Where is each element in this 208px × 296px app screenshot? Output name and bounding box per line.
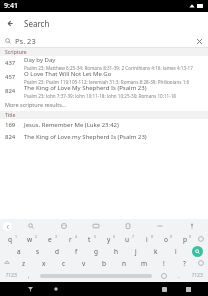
staticText: 457 (5, 73, 16, 81)
staticText: Day by Day (24, 56, 56, 64)
button[interactable]: Search (186, 245, 208, 257)
staticText: o (164, 235, 168, 244)
button[interactable]: q (0, 233, 20, 245)
staticText: s (36, 247, 40, 256)
button[interactable]: y (99, 233, 118, 245)
button[interactable]: 824 (0, 131, 208, 143)
staticText: Jesus, Remember Me (Luke 23:42) (24, 121, 119, 129)
staticText: 3 (55, 234, 58, 239)
button[interactable]: Voice input (176, 219, 208, 233)
button[interactable]: g (86, 245, 106, 257)
button[interactable]: d (47, 245, 66, 257)
button[interactable]: 169 (0, 119, 208, 131)
button[interactable]: z (14, 257, 34, 269)
staticText: The King of Love my Shepherd Is (Psalm 2… (24, 133, 147, 141)
button[interactable]: v (74, 257, 94, 269)
button[interactable]: , (22, 269, 36, 282)
button[interactable]: ?123 (0, 269, 22, 282)
staticText: . (178, 272, 180, 280)
button[interactable]: Clipboard (112, 219, 144, 233)
staticText: m (141, 259, 148, 268)
button[interactable]: 824 (0, 84, 208, 98)
staticText: t (88, 235, 91, 244)
button[interactable]: x (34, 257, 54, 269)
button[interactable]: ? (174, 257, 194, 269)
button[interactable]: . (172, 269, 186, 282)
button[interactable]: 437 (0, 56, 208, 70)
button[interactable]: e (40, 233, 60, 245)
staticText: 7 (132, 234, 135, 239)
staticText: Psalm 23; Psalm 119:105-112; Jeremiah 31… (24, 79, 190, 84)
button[interactable]: s (28, 245, 47, 257)
button[interactable]: 457 (0, 70, 208, 84)
staticText: More scripture results... (5, 101, 67, 108)
button[interactable]: Expand toolbar (0, 219, 14, 233)
button[interactable]: a (9, 245, 28, 257)
button[interactable]: Emoji (47, 219, 80, 233)
button[interactable]: ! (154, 257, 174, 269)
staticText: 4 (75, 234, 78, 239)
staticText: r (69, 235, 72, 244)
staticText: ! (163, 259, 165, 268)
button[interactable]: u (118, 233, 137, 245)
button[interactable]: m (134, 257, 154, 269)
button[interactable]: Backspace (194, 257, 208, 269)
button[interactable]: w (20, 233, 40, 245)
staticText: Search (24, 18, 50, 29)
button[interactable]: Backspace (194, 233, 208, 245)
staticText: f (75, 247, 78, 256)
staticText: g (94, 247, 98, 256)
staticText: v (82, 259, 86, 268)
button[interactable]: j (126, 245, 146, 257)
staticText: The King of Love My Shepherd Is (Psalm 2… (24, 84, 147, 92)
button[interactable]: c (54, 257, 74, 269)
button[interactable]: r (60, 233, 80, 245)
staticText: O Love That Will Not Let Me Go (24, 70, 112, 78)
staticText: e (48, 235, 52, 244)
staticText: 9:41 (4, 1, 18, 11)
button[interactable]: o (156, 233, 175, 245)
button[interactable]: Clear search (193, 35, 205, 47)
staticText: w (27, 235, 33, 244)
staticText: l (175, 247, 177, 256)
staticText: 9 (170, 234, 173, 239)
button[interactable]: Emoji (156, 269, 172, 282)
staticText: Scripture (5, 49, 27, 56)
staticText: x (42, 259, 46, 268)
button[interactable]: p (175, 233, 194, 245)
button[interactable]: Back (182, 283, 194, 295)
button[interactable]: b (94, 257, 114, 269)
button[interactable]: h (106, 245, 126, 257)
button[interactable]: f (66, 245, 86, 257)
staticText: y (107, 235, 111, 244)
button[interactable]: Home (50, 283, 62, 295)
staticText: n (122, 259, 127, 268)
button[interactable]: Search (14, 219, 47, 233)
staticText: u (125, 235, 130, 244)
staticText: p (183, 235, 187, 244)
button[interactable]: n (114, 257, 134, 269)
button[interactable]: Shift (0, 257, 14, 269)
staticText: i (146, 235, 148, 244)
staticText: 437 (5, 59, 16, 67)
button[interactable]: Keyboard layout (24, 283, 36, 295)
staticText: 0 (189, 234, 192, 239)
button[interactable]: GIF (80, 219, 112, 233)
button[interactable]: l (166, 245, 186, 257)
button[interactable]: i (137, 233, 156, 245)
staticText: 824 (5, 133, 16, 141)
button[interactable]: k (146, 245, 166, 257)
staticText: Psalm 23; Matthew 6:25-34; Romans 8:31-3… (24, 65, 193, 70)
staticText: , (28, 272, 30, 280)
button[interactable]: Settings (144, 219, 176, 233)
staticText: ?123 (192, 272, 203, 279)
button[interactable]: Back (0, 12, 22, 34)
button[interactable]: ?123 (186, 269, 208, 282)
button[interactable]: Ps. 23 (0, 34, 208, 47)
button[interactable]: Recents (158, 283, 170, 295)
button[interactable]: t (80, 233, 99, 245)
staticText: z (22, 259, 26, 268)
staticText: q (8, 235, 12, 244)
button[interactable]: More scripture results... (0, 98, 208, 111)
